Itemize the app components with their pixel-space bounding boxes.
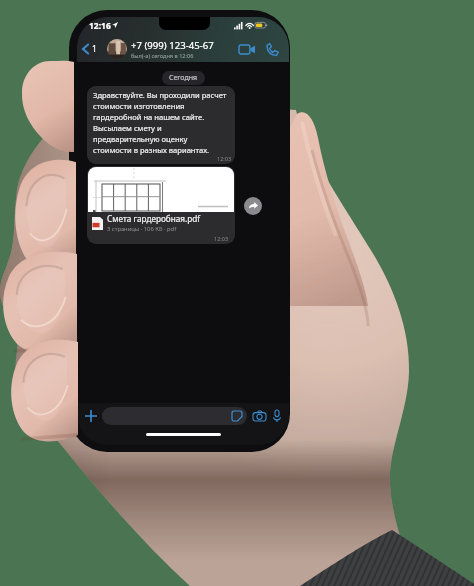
button[interactable]: Contact photo [107,39,127,59]
staticText: Здравствуйте. Вы проходили расчет стоимо… [93,90,227,155]
button[interactable]: Attach [82,407,100,425]
button[interactable]: Video call [236,38,258,60]
staticText: был(-а) сегодня в 12:06 [131,52,194,60]
button[interactable]: Call [261,38,283,60]
staticText: Сегодня [169,73,198,83]
button[interactable]: Здравствуйте. Вы проходили расчет стоимо… [87,86,235,164]
staticText: 1 [92,43,97,55]
button[interactable]: Смета гардеробная.pdf [87,166,235,244]
staticText: +7 (999) 123-45-67 [131,39,214,52]
staticText: 12:16 [89,20,111,32]
button[interactable]: Camera [251,408,267,424]
staticText: 12:03 [217,155,232,162]
staticText: 12:03 [214,235,229,242]
button[interactable]: Back [77,39,102,59]
staticText: Смета гардеробная.pdf [107,213,201,224]
button[interactable]: Forward [244,197,262,215]
staticText: 3 страницы · 106 КБ · pdf [107,225,177,233]
button[interactable] [102,407,247,425]
button[interactable]: Voice message [269,408,285,424]
